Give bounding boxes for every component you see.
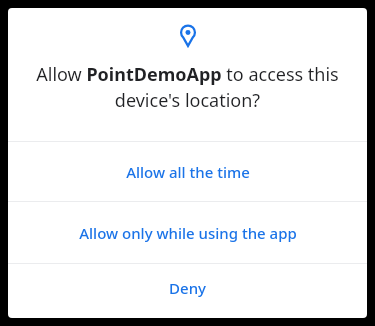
staticText: Allow all the time — [126, 162, 250, 182]
staticText: Allow PointDemoApp to access this device… — [32, 62, 343, 113]
other: Location — [179, 24, 197, 47]
button[interactable]: Allow only while using the app — [8, 202, 367, 263]
staticText: Deny — [169, 278, 206, 298]
button[interactable]: Allow all the time — [8, 142, 367, 201]
staticText: Allow only while using the app — [79, 223, 297, 243]
button[interactable]: Deny — [8, 264, 367, 311]
